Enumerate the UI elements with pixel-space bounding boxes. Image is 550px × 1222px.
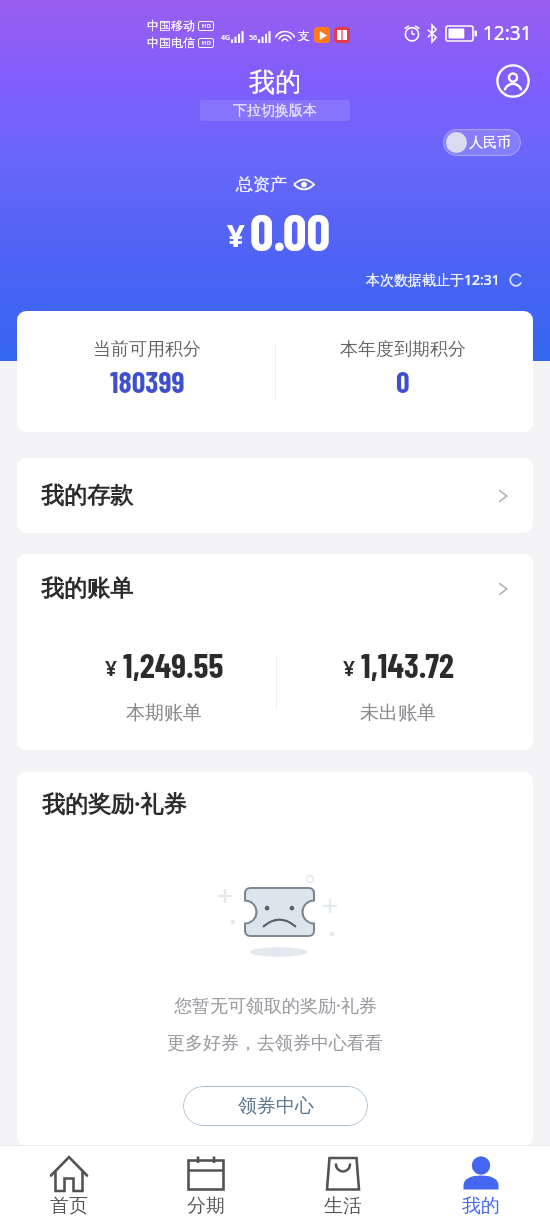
staticText: 我的存款 xyxy=(41,481,133,510)
staticText: 总资产 xyxy=(236,174,287,195)
staticText: 12:31 xyxy=(483,20,532,46)
button[interactable]: 人民币 xyxy=(443,129,521,156)
button[interactable]: 生活 xyxy=(274,1145,412,1222)
staticText: 0 xyxy=(396,363,410,399)
staticText: 领券中心 xyxy=(238,1094,314,1118)
staticText: 本期账单 xyxy=(126,701,202,725)
button[interactable]: 分期 xyxy=(137,1145,274,1222)
staticText: 下拉切换版本 xyxy=(233,102,317,120)
staticText: ¥ xyxy=(343,654,356,683)
staticText: 人民币 xyxy=(469,134,511,152)
staticText: 中国移动 xyxy=(147,18,195,33)
button[interactable]: 首页 xyxy=(0,1145,137,1222)
staticText: 我的奖励·礼券 xyxy=(42,787,187,818)
staticText: 更多好券，去领券中心看看 xyxy=(167,1032,383,1055)
staticText: HD xyxy=(202,39,211,47)
staticText: 中国电信 xyxy=(147,35,195,50)
button[interactable]: 下拉切换版本 xyxy=(200,100,350,121)
staticText: 生活 xyxy=(324,1194,362,1218)
staticText: 1,143.72 xyxy=(361,644,454,685)
button[interactable]: 当前可用积分 xyxy=(17,311,533,432)
staticText: 我的 xyxy=(249,66,301,99)
staticText: 本次数据截止于12:31 xyxy=(366,270,500,289)
staticText: 当前可用积分 xyxy=(93,338,201,361)
button[interactable]: Profile xyxy=(494,62,532,100)
button[interactable]: 我的存款 xyxy=(17,458,533,533)
staticText: 1,249.55 xyxy=(123,644,224,685)
button[interactable]: 领券中心 xyxy=(183,1086,368,1126)
button[interactable]: 我的账单 xyxy=(17,554,533,750)
staticText: 本年度到期积分 xyxy=(340,338,466,361)
staticText: 您暂无可领取的奖励·礼券 xyxy=(174,993,377,1018)
button[interactable]: 我的 xyxy=(412,1145,550,1222)
staticText: 我的 xyxy=(462,1194,500,1218)
staticText: 180399 xyxy=(110,363,185,399)
staticText: 分期 xyxy=(187,1194,225,1218)
staticText: 我的账单 xyxy=(41,574,133,603)
staticText: ¥ xyxy=(227,214,245,256)
staticText: 首页 xyxy=(50,1194,88,1218)
staticText: 支 xyxy=(298,28,310,43)
staticText: ¥ xyxy=(105,654,118,683)
staticText: 0.00 xyxy=(250,199,331,261)
staticText: HD xyxy=(202,22,211,30)
staticText: 未出账单 xyxy=(360,701,436,725)
staticText: 56 xyxy=(249,33,258,43)
staticText: 4G xyxy=(221,33,231,43)
